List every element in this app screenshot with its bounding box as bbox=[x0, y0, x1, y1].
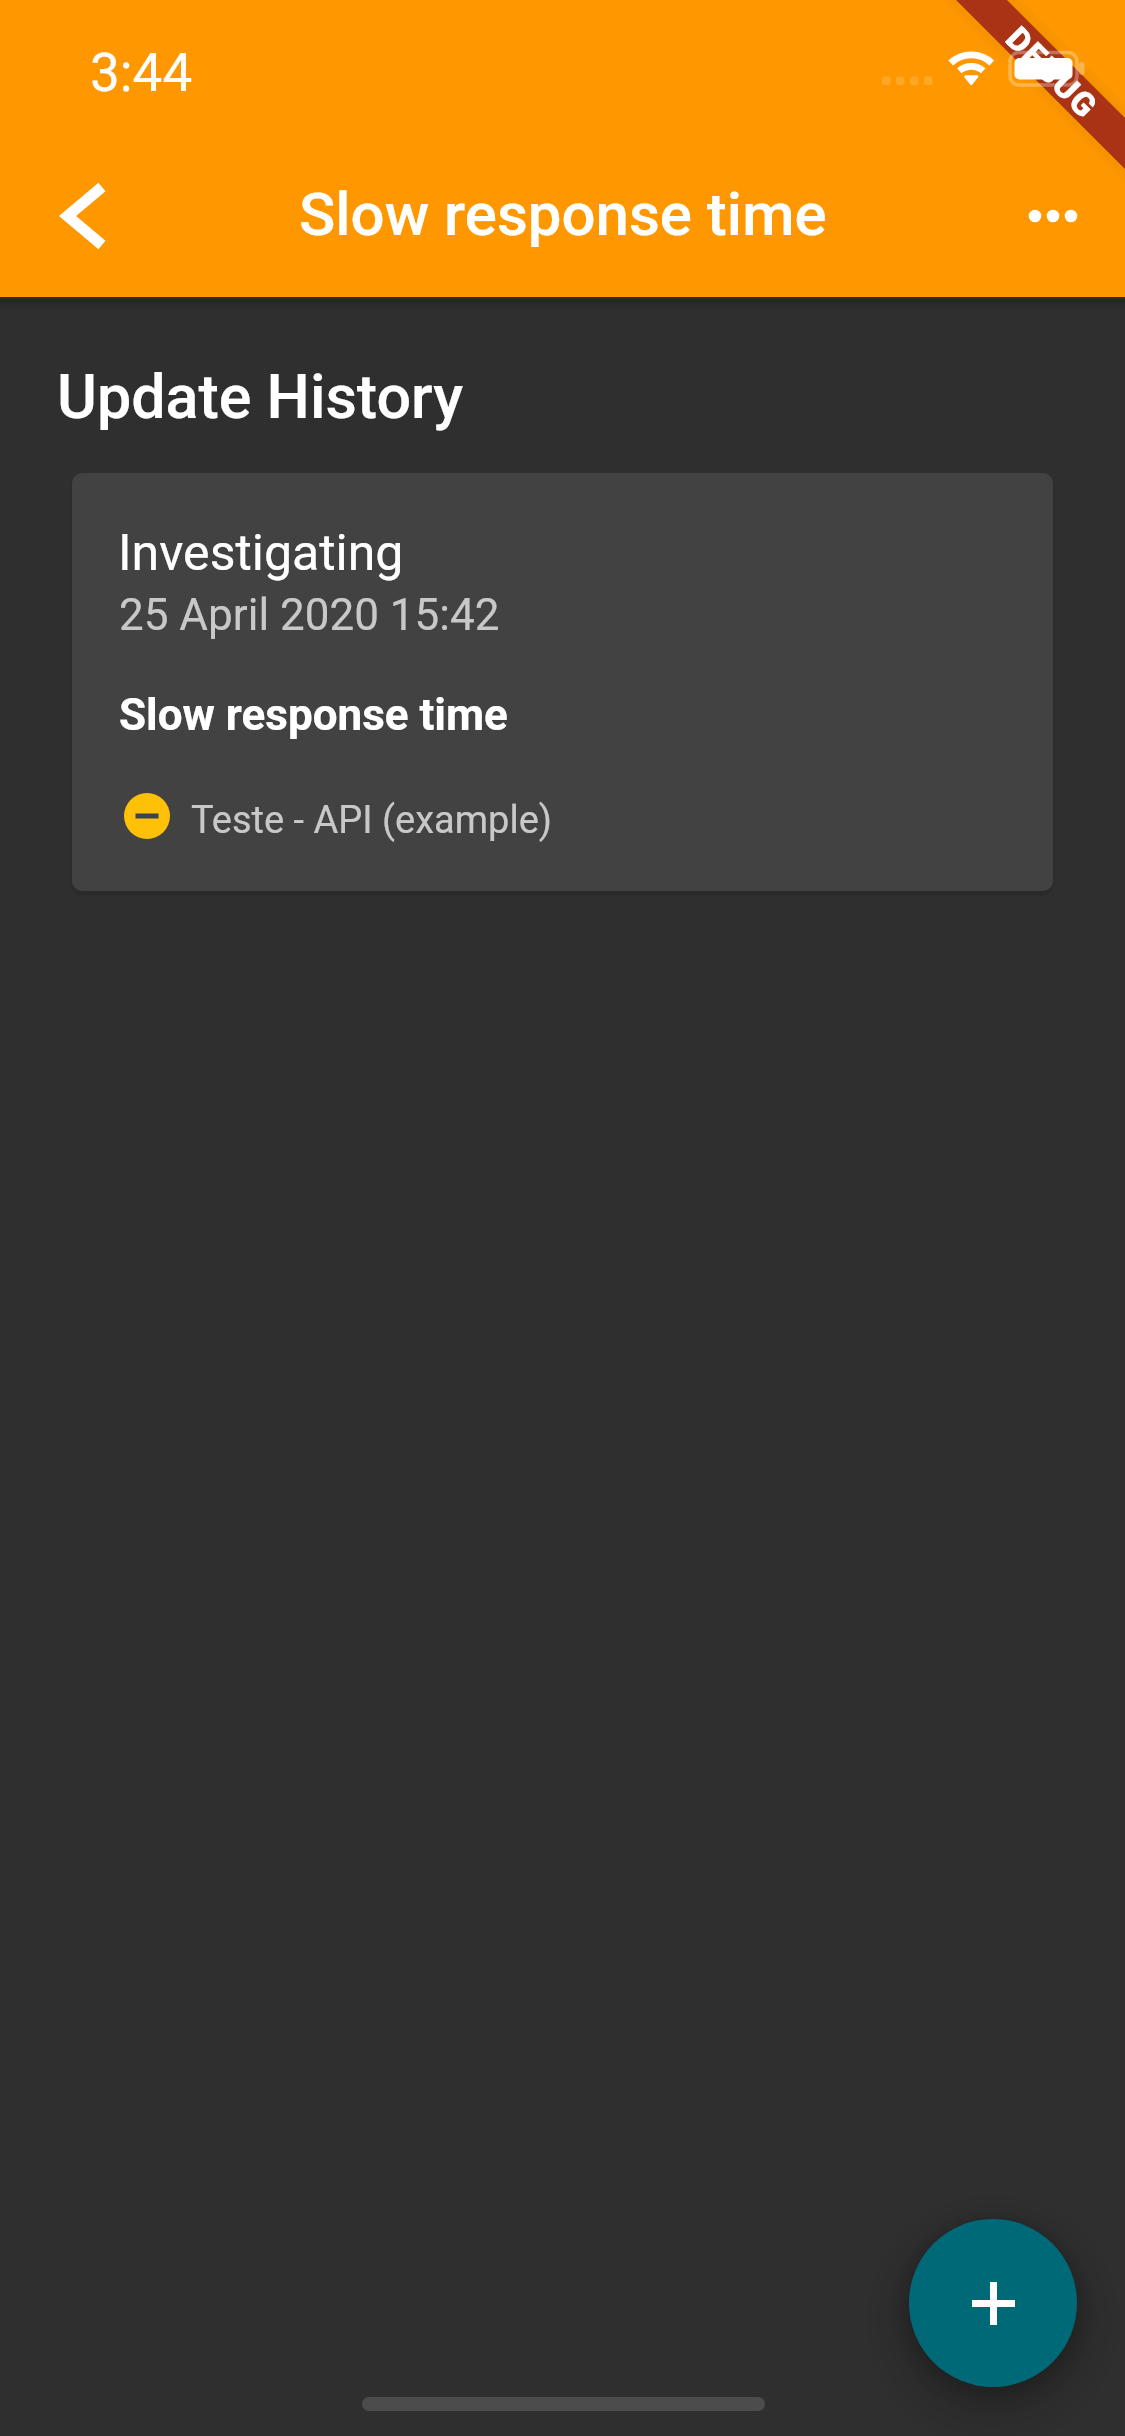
staticText: 3:44 bbox=[90, 42, 193, 104]
staticText: Slow response time bbox=[299, 179, 827, 249]
button[interactable]: Back bbox=[20, 169, 116, 297]
staticText: 25 April 2020 15:42 bbox=[119, 589, 500, 641]
button[interactable]: Add bbox=[909, 2219, 1077, 2387]
staticText: Investigating bbox=[118, 524, 404, 583]
staticText: Slow response time bbox=[119, 689, 508, 741]
staticText: Update History bbox=[57, 361, 464, 432]
staticText: DEBUG bbox=[1000, 19, 1106, 125]
button[interactable]: More options bbox=[1015, 169, 1125, 297]
button[interactable]: Investigating bbox=[72, 473, 1053, 891]
staticText: Teste - API (example) bbox=[191, 798, 553, 843]
